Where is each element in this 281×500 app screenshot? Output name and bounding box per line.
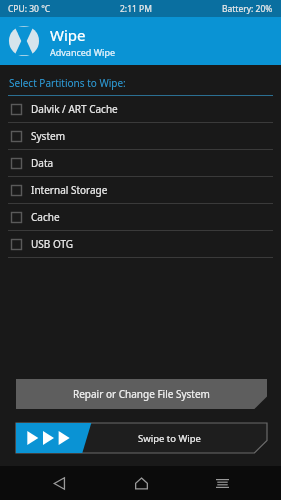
button[interactable]: TWRP logo	[0, 17, 281, 65]
button[interactable]: Repair or Change File System	[16, 379, 267, 409]
staticText: Internal Storage	[31, 183, 108, 197]
staticText: Battery: 20%	[222, 3, 273, 15]
staticText: Swipe to Wipe	[138, 432, 201, 445]
staticText: System	[31, 129, 65, 143]
button[interactable]: USB OTG	[0, 231, 281, 258]
staticText: Repair or Change File System	[73, 387, 210, 401]
button[interactable]: Home	[118, 466, 164, 500]
button[interactable]: Cache	[0, 204, 281, 231]
other: TWRP logo	[8, 25, 40, 57]
button[interactable]: Back	[36, 466, 82, 500]
staticText: Wipe	[50, 25, 86, 45]
staticText: Select Partitions to Wipe:	[9, 76, 126, 90]
staticText: CPU: 30 °C	[8, 3, 51, 15]
button[interactable]: System	[0, 123, 281, 150]
staticText: Data	[31, 156, 54, 170]
button[interactable]: Swipe to Wipe	[16, 423, 267, 453]
staticText: 2:11 PM	[120, 3, 152, 15]
staticText: Dalvik / ART Cache	[31, 102, 118, 116]
staticText: Advanced Wipe	[50, 46, 116, 58]
button[interactable]: Dalvik / ART Cache	[0, 96, 281, 123]
staticText: USB OTG	[31, 237, 74, 251]
staticText: Cache	[31, 210, 60, 224]
button[interactable]: Recent apps	[199, 466, 245, 500]
button[interactable]: Data	[0, 150, 281, 177]
button[interactable]: Internal Storage	[0, 177, 281, 204]
